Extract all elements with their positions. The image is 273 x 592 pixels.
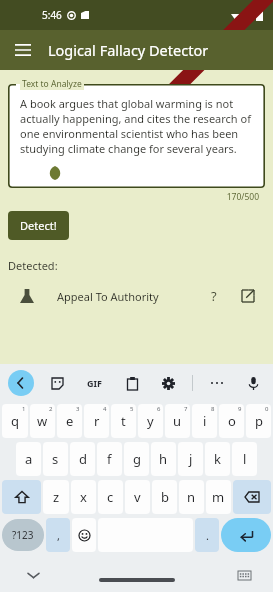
staticText: l [243, 450, 247, 468]
button[interactable]: Help [203, 285, 225, 307]
button[interactable]: More options [205, 371, 229, 395]
staticText: d [79, 450, 87, 468]
button[interactable]: Stickers [45, 371, 69, 395]
staticText: . [206, 528, 209, 543]
staticText: o [228, 412, 236, 430]
staticText: f [107, 450, 112, 468]
button[interactable]: h [151, 442, 176, 476]
staticText: i [203, 412, 207, 430]
staticText: g [133, 450, 141, 468]
staticText: y [147, 412, 154, 430]
staticText: 9 [238, 405, 242, 413]
staticText: 5 [130, 405, 134, 413]
staticText: 5:46 [42, 8, 62, 22]
button[interactable]: j [178, 442, 203, 476]
staticText: h [159, 450, 168, 468]
button[interactable]: , [46, 518, 70, 552]
button[interactable]: r [84, 404, 109, 438]
button[interactable]: u [165, 404, 190, 438]
button[interactable]: y [138, 404, 163, 438]
staticText: j [189, 450, 193, 468]
button[interactable]: Detect! [8, 211, 69, 240]
staticText: r [94, 412, 100, 430]
button[interactable]: p [246, 404, 271, 438]
button[interactable]: Settings [156, 371, 180, 395]
staticText: ?123 [12, 528, 34, 542]
button[interactable]: a [16, 442, 41, 476]
button[interactable]: Backspace [233, 480, 271, 514]
button[interactable]: Switch keyboard [233, 564, 255, 586]
staticText: A book argues that global warming is not… [20, 96, 253, 156]
button[interactable]: g [124, 442, 149, 476]
button[interactable]: e [57, 404, 82, 438]
staticText: Logical Fallacy Detector [48, 40, 209, 60]
button[interactable]: n [179, 480, 204, 514]
button[interactable]: Enter [221, 518, 271, 552]
staticText: s [52, 450, 59, 468]
staticText: x [80, 488, 87, 506]
button[interactable]: ?123 [2, 519, 44, 551]
staticText: Appeal To Authority [57, 289, 159, 304]
staticText: 2 [49, 405, 53, 413]
button[interactable]: Menu [6, 33, 40, 67]
button[interactable]: k [205, 442, 230, 476]
staticText: b [161, 488, 169, 506]
button[interactable]: z [43, 480, 69, 514]
button[interactable]: Shift [2, 480, 41, 514]
button[interactable]: GIF [80, 369, 108, 397]
staticText: m [212, 488, 225, 506]
staticText: p [255, 412, 263, 430]
button[interactable]: Emoji [72, 518, 96, 552]
button[interactable]: o [219, 404, 244, 438]
button[interactable]: i [192, 404, 217, 438]
button[interactable]: s [43, 442, 68, 476]
staticText: c [107, 488, 114, 506]
button[interactable]: m [206, 480, 231, 514]
button[interactable]: Back [8, 370, 34, 396]
staticText: t [121, 412, 126, 430]
button[interactable]: w [30, 404, 55, 438]
staticText: k [214, 450, 221, 468]
staticText: Detected: [8, 258, 58, 273]
staticText: 3 [76, 405, 80, 413]
staticText: 4 [103, 405, 107, 413]
button[interactable]: Appeal To Authority [8, 285, 265, 307]
button[interactable]: v [125, 480, 150, 514]
staticText: 6 [157, 405, 161, 413]
button[interactable]: Open in new [237, 285, 259, 307]
button[interactable]: f [97, 442, 122, 476]
button[interactable]: l [232, 442, 257, 476]
staticText: w [37, 412, 48, 430]
staticText: Detect! [20, 218, 57, 233]
staticText: , [57, 528, 60, 543]
staticText: 7 [184, 405, 188, 413]
staticText: z [53, 488, 60, 506]
button[interactable]: c [98, 480, 123, 514]
button[interactable]: q [2, 404, 28, 438]
staticText: 8 [211, 405, 215, 413]
button[interactable]: Voice input [241, 371, 265, 395]
button[interactable]: b [152, 480, 177, 514]
button[interactable]: t [111, 404, 136, 438]
staticText: 170/500 [8, 191, 259, 203]
staticText: Text to Analyze [22, 78, 82, 90]
staticText: q [11, 412, 19, 430]
button[interactable] [8, 84, 265, 188]
button[interactable]: Hide keyboard [22, 564, 44, 586]
staticText: a [25, 450, 33, 468]
button[interactable]: . [195, 518, 219, 552]
staticText: 0 [265, 405, 269, 413]
staticText: v [134, 488, 141, 506]
button[interactable]: d [70, 442, 95, 476]
button[interactable]: x [71, 480, 96, 514]
staticText: 1 [22, 405, 26, 413]
staticText: u [173, 412, 182, 430]
staticText: n [187, 488, 196, 506]
staticText: GIF [87, 377, 102, 389]
button[interactable]: Clipboard [120, 371, 144, 395]
staticText: ? [211, 287, 217, 305]
staticText: e [66, 412, 74, 430]
